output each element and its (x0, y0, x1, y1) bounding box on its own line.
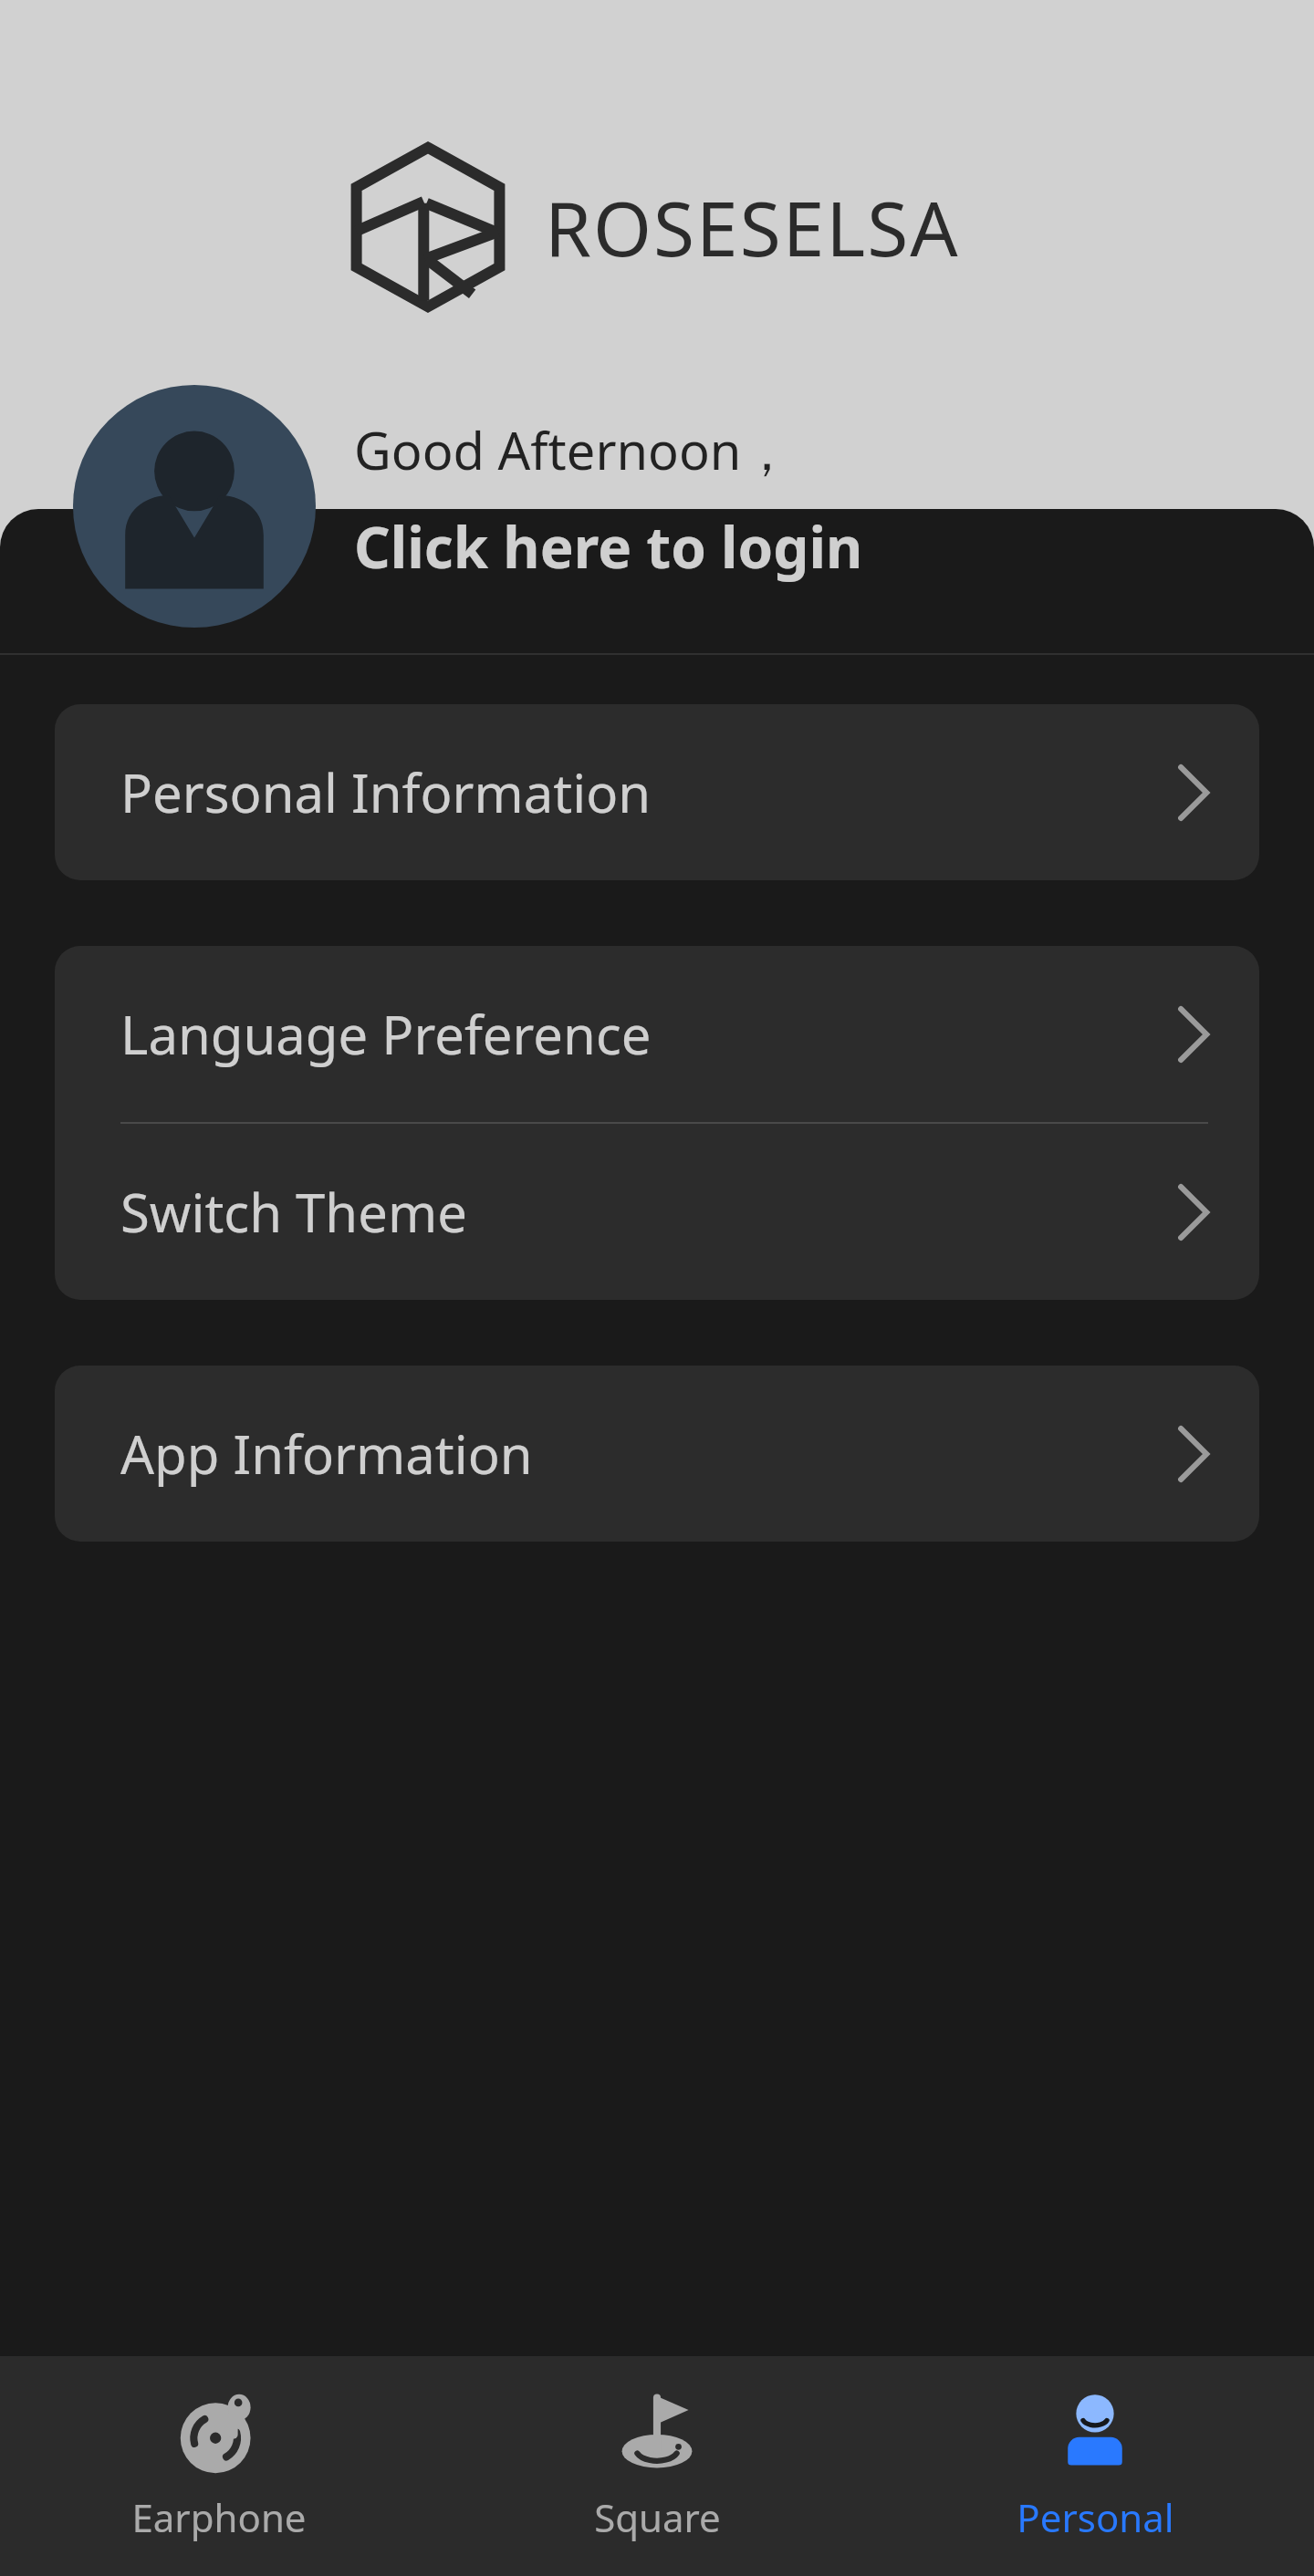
staticText: ROSESELSA (545, 176, 960, 278)
button[interactable]: Earphone (0, 2356, 438, 2576)
staticText: Switch Theme (120, 1176, 1177, 1248)
button[interactable]: Personal (876, 2356, 1314, 2576)
staticText: Language Preference (120, 998, 1177, 1070)
staticText: App Information (120, 1418, 1177, 1490)
staticText: Square (594, 2491, 721, 2543)
button[interactable]: App Information (55, 1366, 1259, 1542)
button[interactable]: Click here to login (354, 508, 863, 585)
staticText: Personal Information (120, 756, 1177, 828)
staticText: Personal (1017, 2491, 1174, 2543)
button[interactable]: Profile avatar (73, 385, 316, 628)
button[interactable]: Personal Information (55, 704, 1259, 880)
button[interactable]: Language Preference (55, 946, 1259, 1122)
button[interactable]: Square (438, 2356, 876, 2576)
button[interactable]: Switch Theme (55, 1124, 1259, 1300)
staticText: Earphone (131, 2491, 307, 2543)
staticText: Good Afternoon， (354, 415, 793, 484)
